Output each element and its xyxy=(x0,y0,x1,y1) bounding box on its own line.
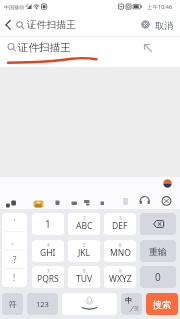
button[interactable] xyxy=(160,177,175,191)
button[interactable] xyxy=(140,213,176,235)
staticText: 重输 xyxy=(149,246,167,257)
staticText: 3 xyxy=(119,215,122,221)
staticText: TUV xyxy=(76,273,93,285)
button[interactable]: 中 xyxy=(121,293,142,315)
staticText: 。 xyxy=(11,237,18,246)
button[interactable] xyxy=(0,37,180,67)
button[interactable] xyxy=(51,195,63,208)
staticText: JKL xyxy=(78,247,91,259)
staticText: 证件扫描王 xyxy=(18,41,71,54)
staticText: 中国移动 xyxy=(4,4,24,10)
staticText: 英 xyxy=(134,305,139,311)
staticText: MNO xyxy=(110,247,131,259)
staticText: 1 xyxy=(45,217,51,231)
button[interactable]: 8 xyxy=(68,266,100,288)
button[interactable] xyxy=(139,39,156,56)
button[interactable] xyxy=(119,193,132,208)
button[interactable]: 4 xyxy=(32,240,64,262)
staticText: GHI xyxy=(40,247,56,259)
button[interactable] xyxy=(2,195,19,209)
button[interactable]: 7 xyxy=(32,266,64,288)
staticText: ’ xyxy=(14,217,16,227)
button[interactable]: 取消 xyxy=(150,14,178,36)
staticText: 取消 xyxy=(155,20,173,31)
button[interactable] xyxy=(81,195,93,208)
staticText: 中 xyxy=(125,296,132,305)
button[interactable]: 2 xyxy=(68,213,100,235)
staticText: 9 xyxy=(119,268,122,274)
button[interactable] xyxy=(159,193,175,208)
staticText: 5 xyxy=(83,242,86,248)
button[interactable]: 重输 xyxy=(140,240,176,262)
button[interactable] xyxy=(2,213,27,287)
staticText: ABC xyxy=(76,220,93,232)
staticText: 4G xyxy=(25,3,30,8)
button[interactable]: 搜索 xyxy=(146,293,178,315)
staticText: 符 xyxy=(9,299,17,309)
staticText: 7 xyxy=(47,268,50,274)
button[interactable]: 5 xyxy=(68,240,100,262)
staticText: WXYZ xyxy=(109,273,132,285)
staticText: PQRS xyxy=(37,273,59,285)
staticText: ? xyxy=(13,254,17,265)
button[interactable]: 3 xyxy=(104,213,136,235)
button[interactable] xyxy=(2,14,16,36)
button[interactable] xyxy=(67,195,80,208)
staticText: 4 xyxy=(47,242,50,248)
staticText: 搜索 xyxy=(153,299,171,310)
button[interactable]: 123 xyxy=(27,293,58,315)
button[interactable] xyxy=(62,293,117,315)
staticText: 6 xyxy=(119,242,122,248)
staticText: 0 xyxy=(155,270,161,284)
button[interactable]: 9 xyxy=(104,266,136,288)
staticText: 8 xyxy=(83,268,86,274)
staticText: 123 xyxy=(36,299,49,309)
button[interactable]: 0 xyxy=(140,266,176,288)
button[interactable] xyxy=(136,193,152,208)
button[interactable]: 6 xyxy=(104,240,136,262)
staticText: 上午10:46 xyxy=(147,3,173,11)
staticText: ! xyxy=(13,272,16,283)
staticText: 2 xyxy=(83,215,86,221)
button[interactable]: 1 xyxy=(32,213,64,235)
button[interactable]: 符 xyxy=(2,293,23,315)
staticText: 证件扫描王 xyxy=(27,19,76,31)
button[interactable] xyxy=(29,195,47,209)
button[interactable] xyxy=(138,16,153,33)
button[interactable] xyxy=(96,195,107,208)
staticText: DEF xyxy=(112,220,128,232)
